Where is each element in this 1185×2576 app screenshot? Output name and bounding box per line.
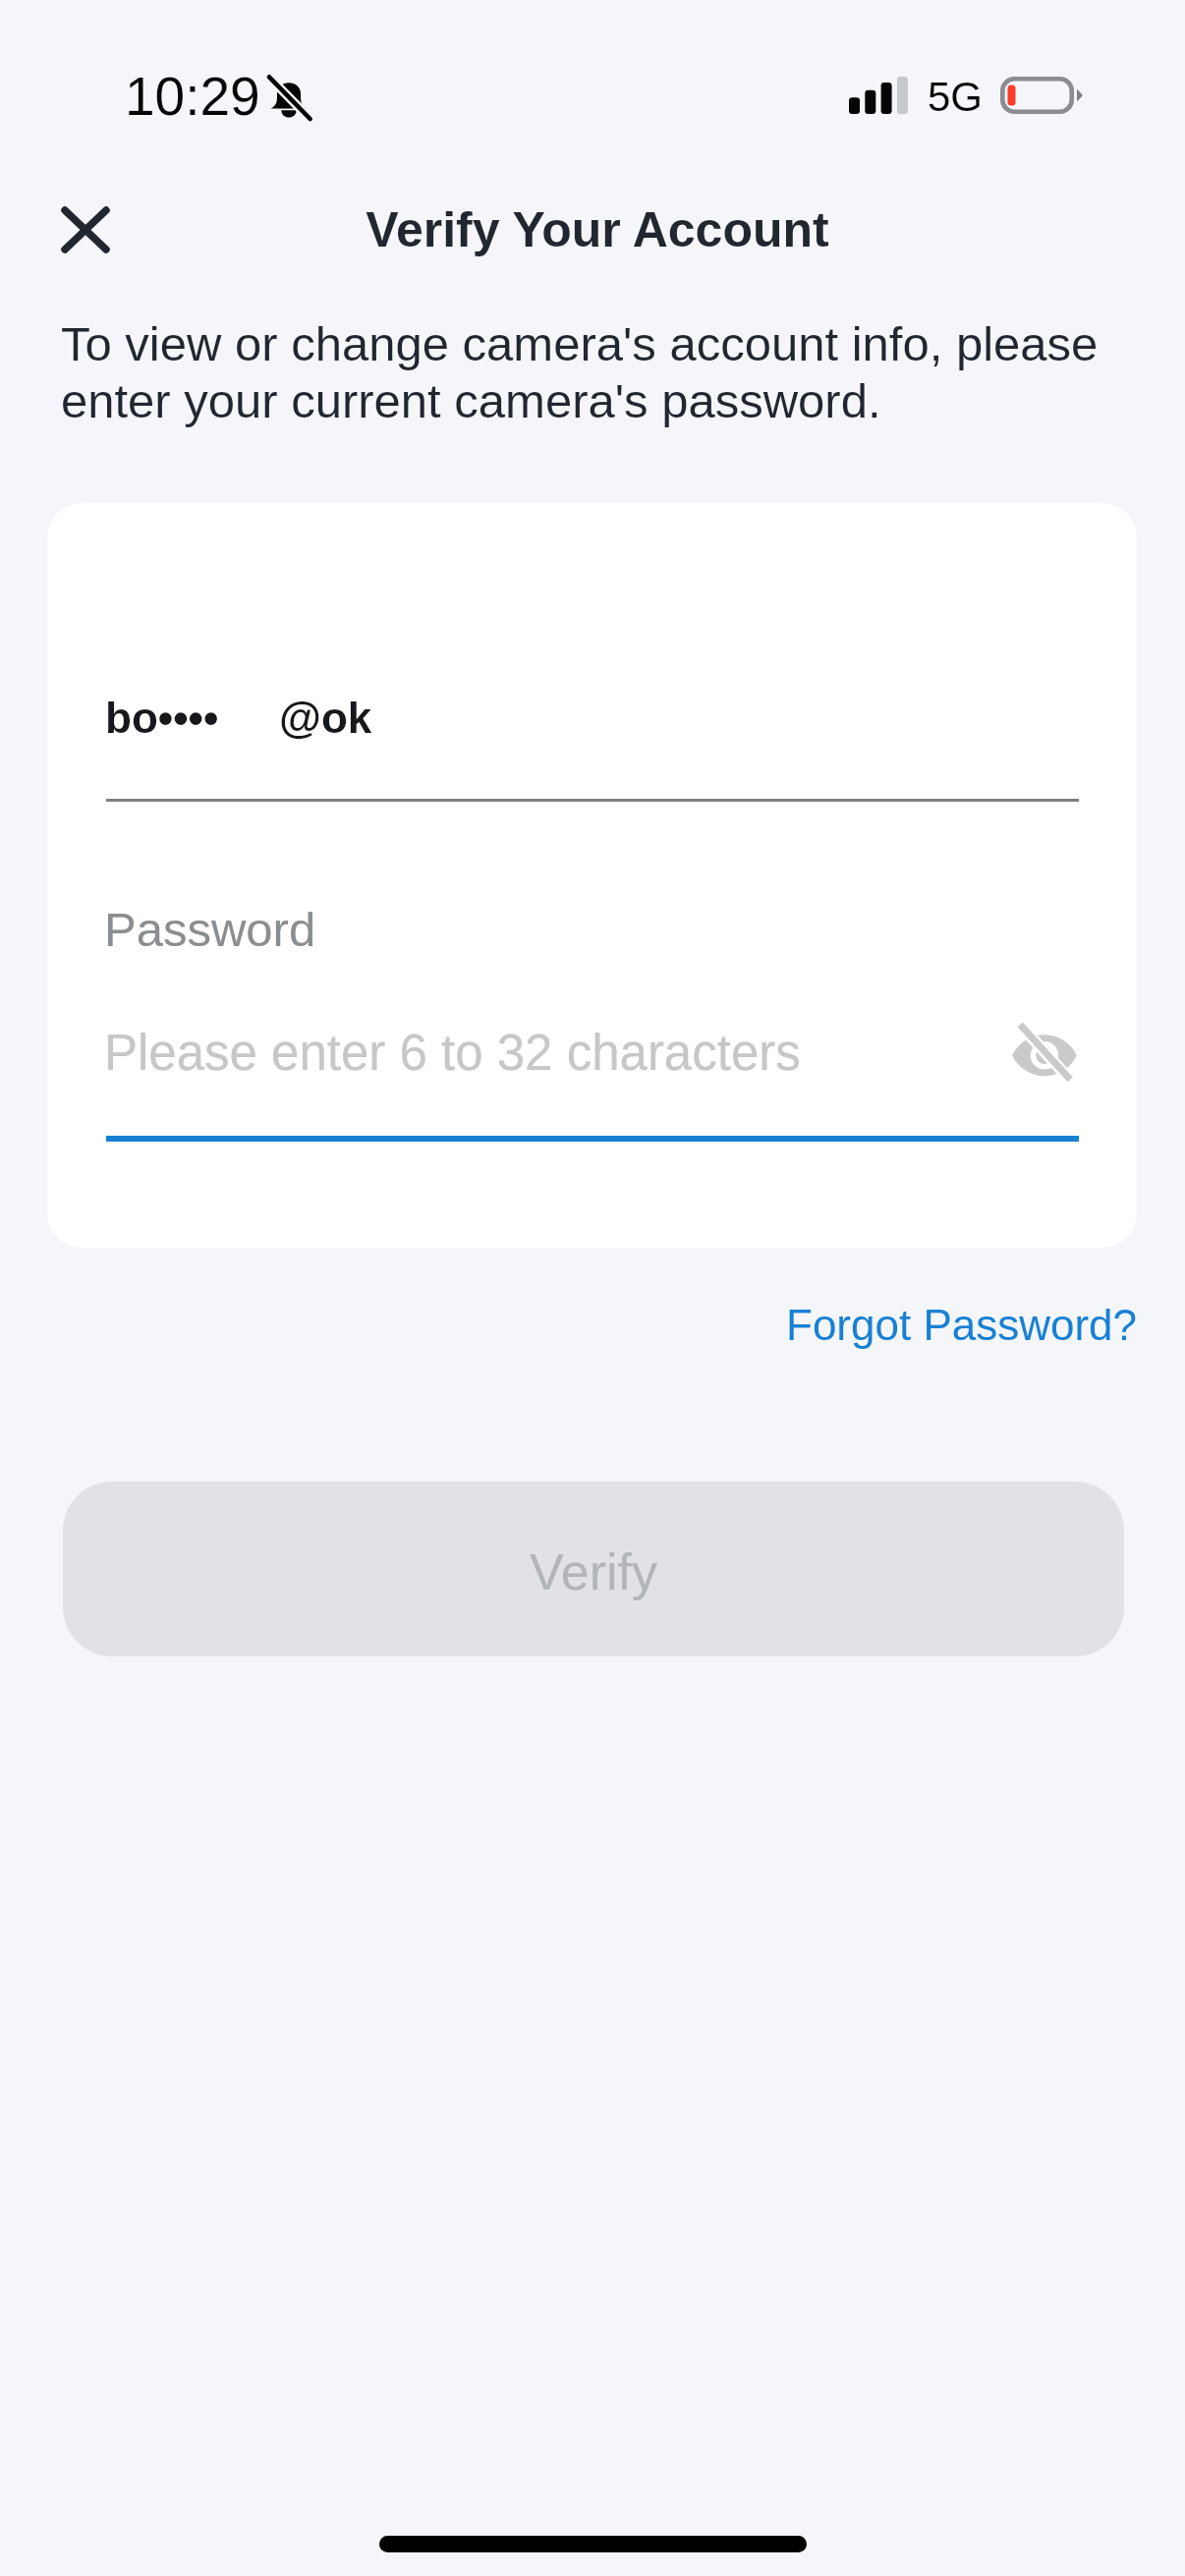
staticText: bo•••• [105, 694, 219, 742]
staticText: Verify [530, 1543, 658, 1600]
staticText: 5G [928, 74, 984, 120]
staticText: Please enter 6 to 32 characters [104, 1025, 801, 1081]
staticText: Verify Your Account [366, 202, 829, 257]
staticText: To view or change camera's account info,… [61, 317, 1136, 427]
button[interactable]: Verify [63, 1482, 1124, 1656]
staticText: @ok [279, 694, 372, 742]
staticText: 10:29 [125, 66, 260, 126]
button[interactable]: Show password [978, 984, 1111, 1122]
button[interactable]: Close [36, 181, 135, 279]
button[interactable]: Forgot Password? [747, 1279, 1185, 1371]
staticText: Password [104, 903, 316, 957]
staticText: Forgot Password? [786, 1301, 1138, 1349]
